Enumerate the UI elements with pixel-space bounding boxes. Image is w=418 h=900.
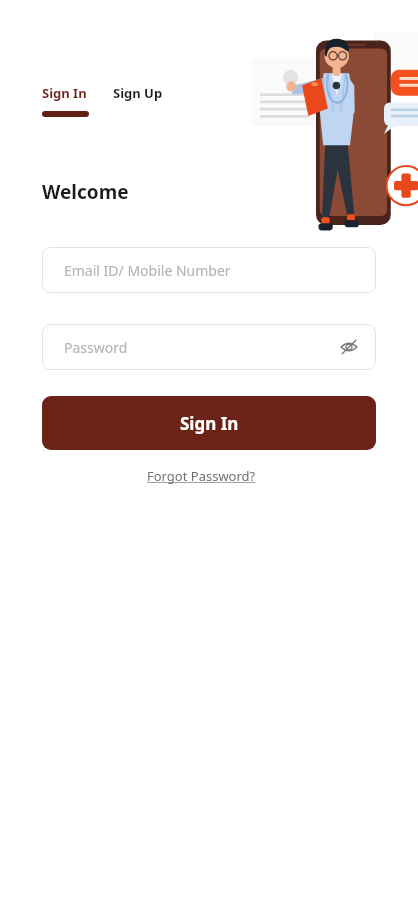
button[interactable]: Forgot Password? xyxy=(147,467,256,485)
staticText: Sign In xyxy=(42,84,87,102)
staticText: Email ID/ Mobile Number xyxy=(64,261,231,280)
button[interactable]: Sign In xyxy=(42,396,376,450)
staticText: Sign Up xyxy=(113,84,163,102)
button[interactable]: Password xyxy=(42,324,376,370)
button[interactable]: Sign Up xyxy=(113,84,163,102)
staticText: Welcome xyxy=(42,179,129,205)
staticText: Sign In xyxy=(180,412,239,435)
button[interactable]: Sign In xyxy=(42,84,89,117)
button[interactable]: Email ID/ Mobile Number xyxy=(42,247,376,293)
staticText: Forgot Password? xyxy=(147,467,256,485)
button[interactable]: Show password xyxy=(336,334,362,360)
staticText: Password xyxy=(64,338,128,357)
